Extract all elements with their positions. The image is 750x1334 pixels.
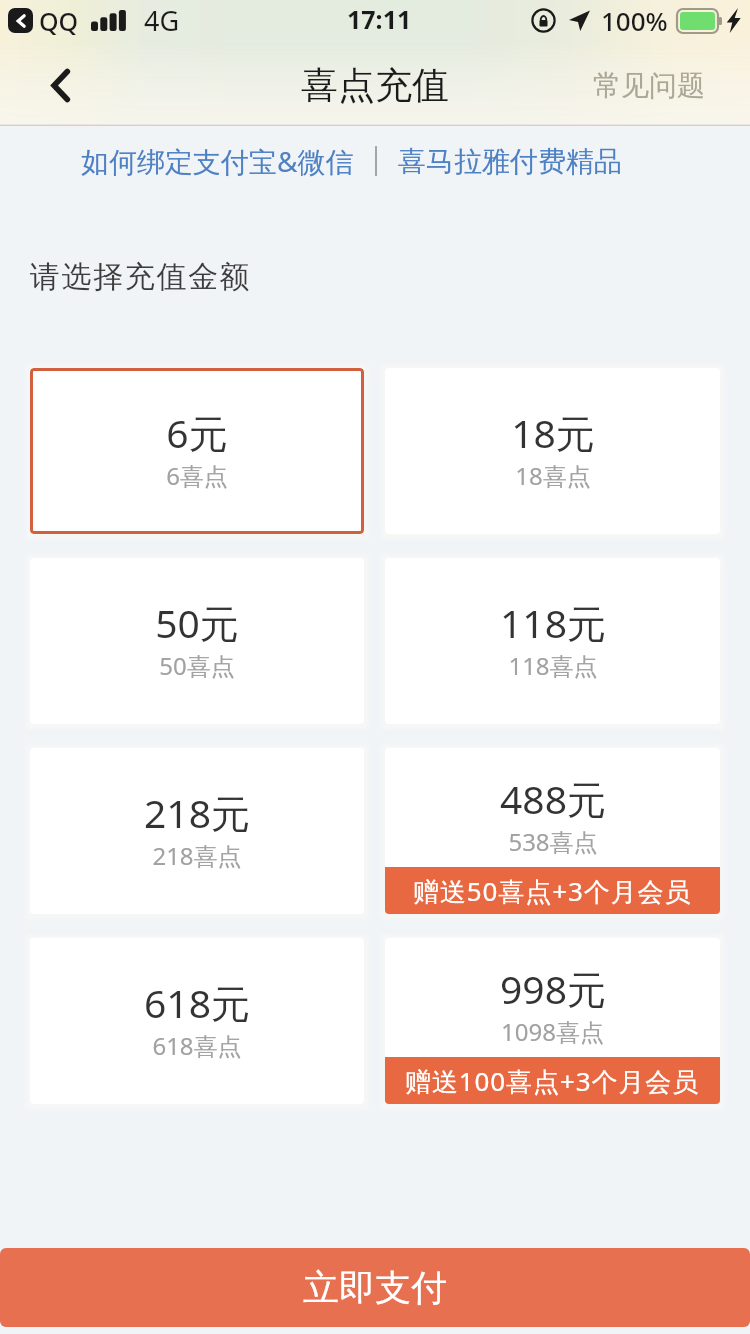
button[interactable]: Back bbox=[0, 44, 105, 126]
staticText: 50元 bbox=[155, 596, 239, 649]
button[interactable]: 立即支付 bbox=[0, 1248, 750, 1327]
staticText: 618元 bbox=[144, 976, 250, 1029]
button[interactable]: 喜马拉雅付费精品 bbox=[394, 135, 626, 188]
staticText: QQ bbox=[39, 4, 79, 38]
staticText: 218元 bbox=[144, 786, 250, 839]
staticText: 如何绑定支付宝&微信 bbox=[81, 142, 354, 180]
staticText: 18喜点 bbox=[515, 459, 591, 492]
staticText: 118喜点 bbox=[508, 649, 598, 682]
button[interactable]: 50元 bbox=[30, 558, 364, 724]
staticText: 赠送100喜点+3个月会员 bbox=[405, 1063, 700, 1099]
staticText: 100% bbox=[601, 3, 668, 38]
staticText: 赠送50喜点+3个月会员 bbox=[413, 873, 692, 909]
button[interactable]: 18元 bbox=[385, 368, 720, 534]
staticText: 538喜点 bbox=[508, 825, 598, 858]
staticText: 488元 bbox=[500, 772, 606, 825]
staticText: 50喜点 bbox=[159, 649, 235, 682]
staticText: 998元 bbox=[500, 962, 606, 1015]
button[interactable]: 常见问题 bbox=[593, 44, 705, 126]
staticText: 6元 bbox=[166, 406, 228, 459]
staticText: 17:11 bbox=[347, 2, 412, 36]
button[interactable]: 998元 bbox=[385, 938, 720, 1104]
button[interactable]: 118元 bbox=[385, 558, 720, 724]
staticText: 218喜点 bbox=[152, 839, 242, 872]
button[interactable]: 如何绑定支付宝&微信 bbox=[77, 133, 358, 189]
staticText: 4G bbox=[144, 2, 180, 39]
button[interactable]: 218元 bbox=[30, 748, 364, 914]
staticText: 常见问题 bbox=[593, 68, 705, 103]
staticText: 1098喜点 bbox=[501, 1015, 604, 1048]
staticText: 立即支付 bbox=[303, 1265, 447, 1310]
staticText: 喜点充值 bbox=[301, 62, 449, 109]
button[interactable]: 618元 bbox=[30, 938, 364, 1104]
staticText: 118元 bbox=[500, 596, 606, 649]
staticText: 喜马拉雅付费精品 bbox=[398, 144, 622, 179]
staticText: 618喜点 bbox=[152, 1029, 242, 1062]
staticText: 18元 bbox=[511, 406, 595, 459]
staticText: 请选择充值金额 bbox=[30, 258, 252, 296]
staticText: 6喜点 bbox=[166, 459, 228, 492]
button[interactable]: 6元 bbox=[30, 368, 364, 534]
button[interactable]: 488元 bbox=[385, 748, 720, 914]
